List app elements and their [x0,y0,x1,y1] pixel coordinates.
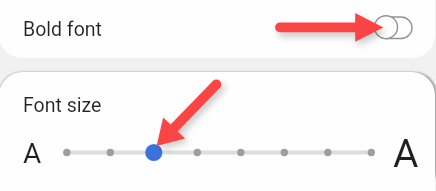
button[interactable]: Bold font, off [371,12,417,43]
staticText: A [393,131,419,177]
staticText: Font size [23,94,102,117]
staticText: A [23,137,42,170]
button[interactable]: Bold font [0,0,435,58]
staticText: Bold font [23,18,102,41]
button[interactable]: Font size slider [55,136,385,168]
